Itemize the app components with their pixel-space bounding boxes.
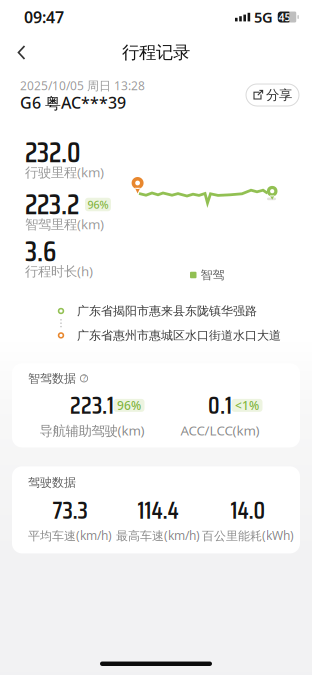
staticText: 行程时长(h): [25, 262, 93, 280]
staticText: 智驾里程(km): [25, 215, 104, 233]
staticText: 导航辅助驾驶(km): [39, 421, 144, 439]
staticText: ACC/LCC(km): [180, 421, 259, 439]
staticText: 09:47: [24, 6, 64, 28]
staticText: 分享: [266, 87, 292, 103]
staticText: 智驾数据: [28, 371, 76, 386]
staticText: 5G: [254, 7, 273, 27]
staticText: 平均车速(km/h): [28, 527, 112, 543]
staticText: 驾驶数据: [28, 475, 76, 490]
staticText: 14.0: [230, 491, 265, 529]
staticText: 223.2: [25, 182, 79, 227]
staticText: 2025/10/05 周日 13:28: [20, 77, 145, 93]
staticText: 行驶里程(km): [25, 163, 104, 181]
staticText: 114.4: [137, 491, 178, 529]
staticText: 行程记录: [122, 42, 190, 63]
staticText: 3.6: [25, 229, 56, 274]
staticText: 96%: [87, 197, 108, 212]
staticText: 百公里能耗(kWh): [202, 527, 294, 543]
staticText: 0.1: [208, 386, 232, 424]
staticText: 最高车速(km/h): [116, 527, 200, 543]
staticText: 45: [278, 10, 290, 24]
staticText: 96%: [117, 397, 141, 413]
button[interactable]: About smart driving data: [80, 374, 88, 382]
button[interactable]: 分享: [246, 84, 299, 106]
staticText: G6 粤AC***39: [20, 92, 126, 113]
staticText: 广东省揭阳市惠来县东陇镇华强路: [77, 304, 257, 318]
staticText: 232.0: [25, 130, 80, 175]
staticText: ?: [82, 373, 85, 384]
staticText: <1%: [235, 397, 259, 413]
staticText: 智驾: [200, 268, 224, 282]
button[interactable]: Back: [0, 37, 31, 68]
staticText: 广东省惠州市惠城区水口街道水口大道: [77, 328, 281, 343]
staticText: 223.1: [70, 386, 114, 424]
staticText: 73.3: [52, 491, 87, 529]
